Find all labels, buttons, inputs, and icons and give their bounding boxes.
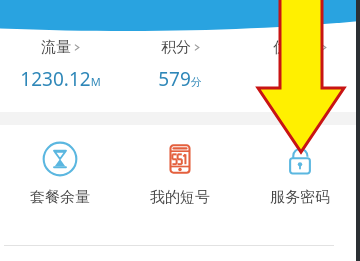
- staticText: 我的短号: [150, 188, 210, 207]
- button[interactable]: 服务密码: [240, 140, 360, 207]
- staticText: 1230.12M: [20, 66, 101, 92]
- button[interactable]: 我的短号: [120, 140, 240, 207]
- staticText: 积分: [161, 38, 191, 57]
- staticText: 流量: [41, 38, 71, 57]
- button[interactable]: 优惠券: [240, 36, 360, 66]
- staticText: 579分: [158, 66, 202, 92]
- staticText: 服务密码: [270, 188, 330, 207]
- button[interactable]: 套餐余量: [0, 140, 120, 207]
- button[interactable]: 积分: [120, 36, 240, 92]
- button[interactable]: 流量: [0, 36, 120, 92]
- staticText: 优惠券: [273, 38, 318, 57]
- staticText: 套餐余量: [30, 188, 90, 207]
